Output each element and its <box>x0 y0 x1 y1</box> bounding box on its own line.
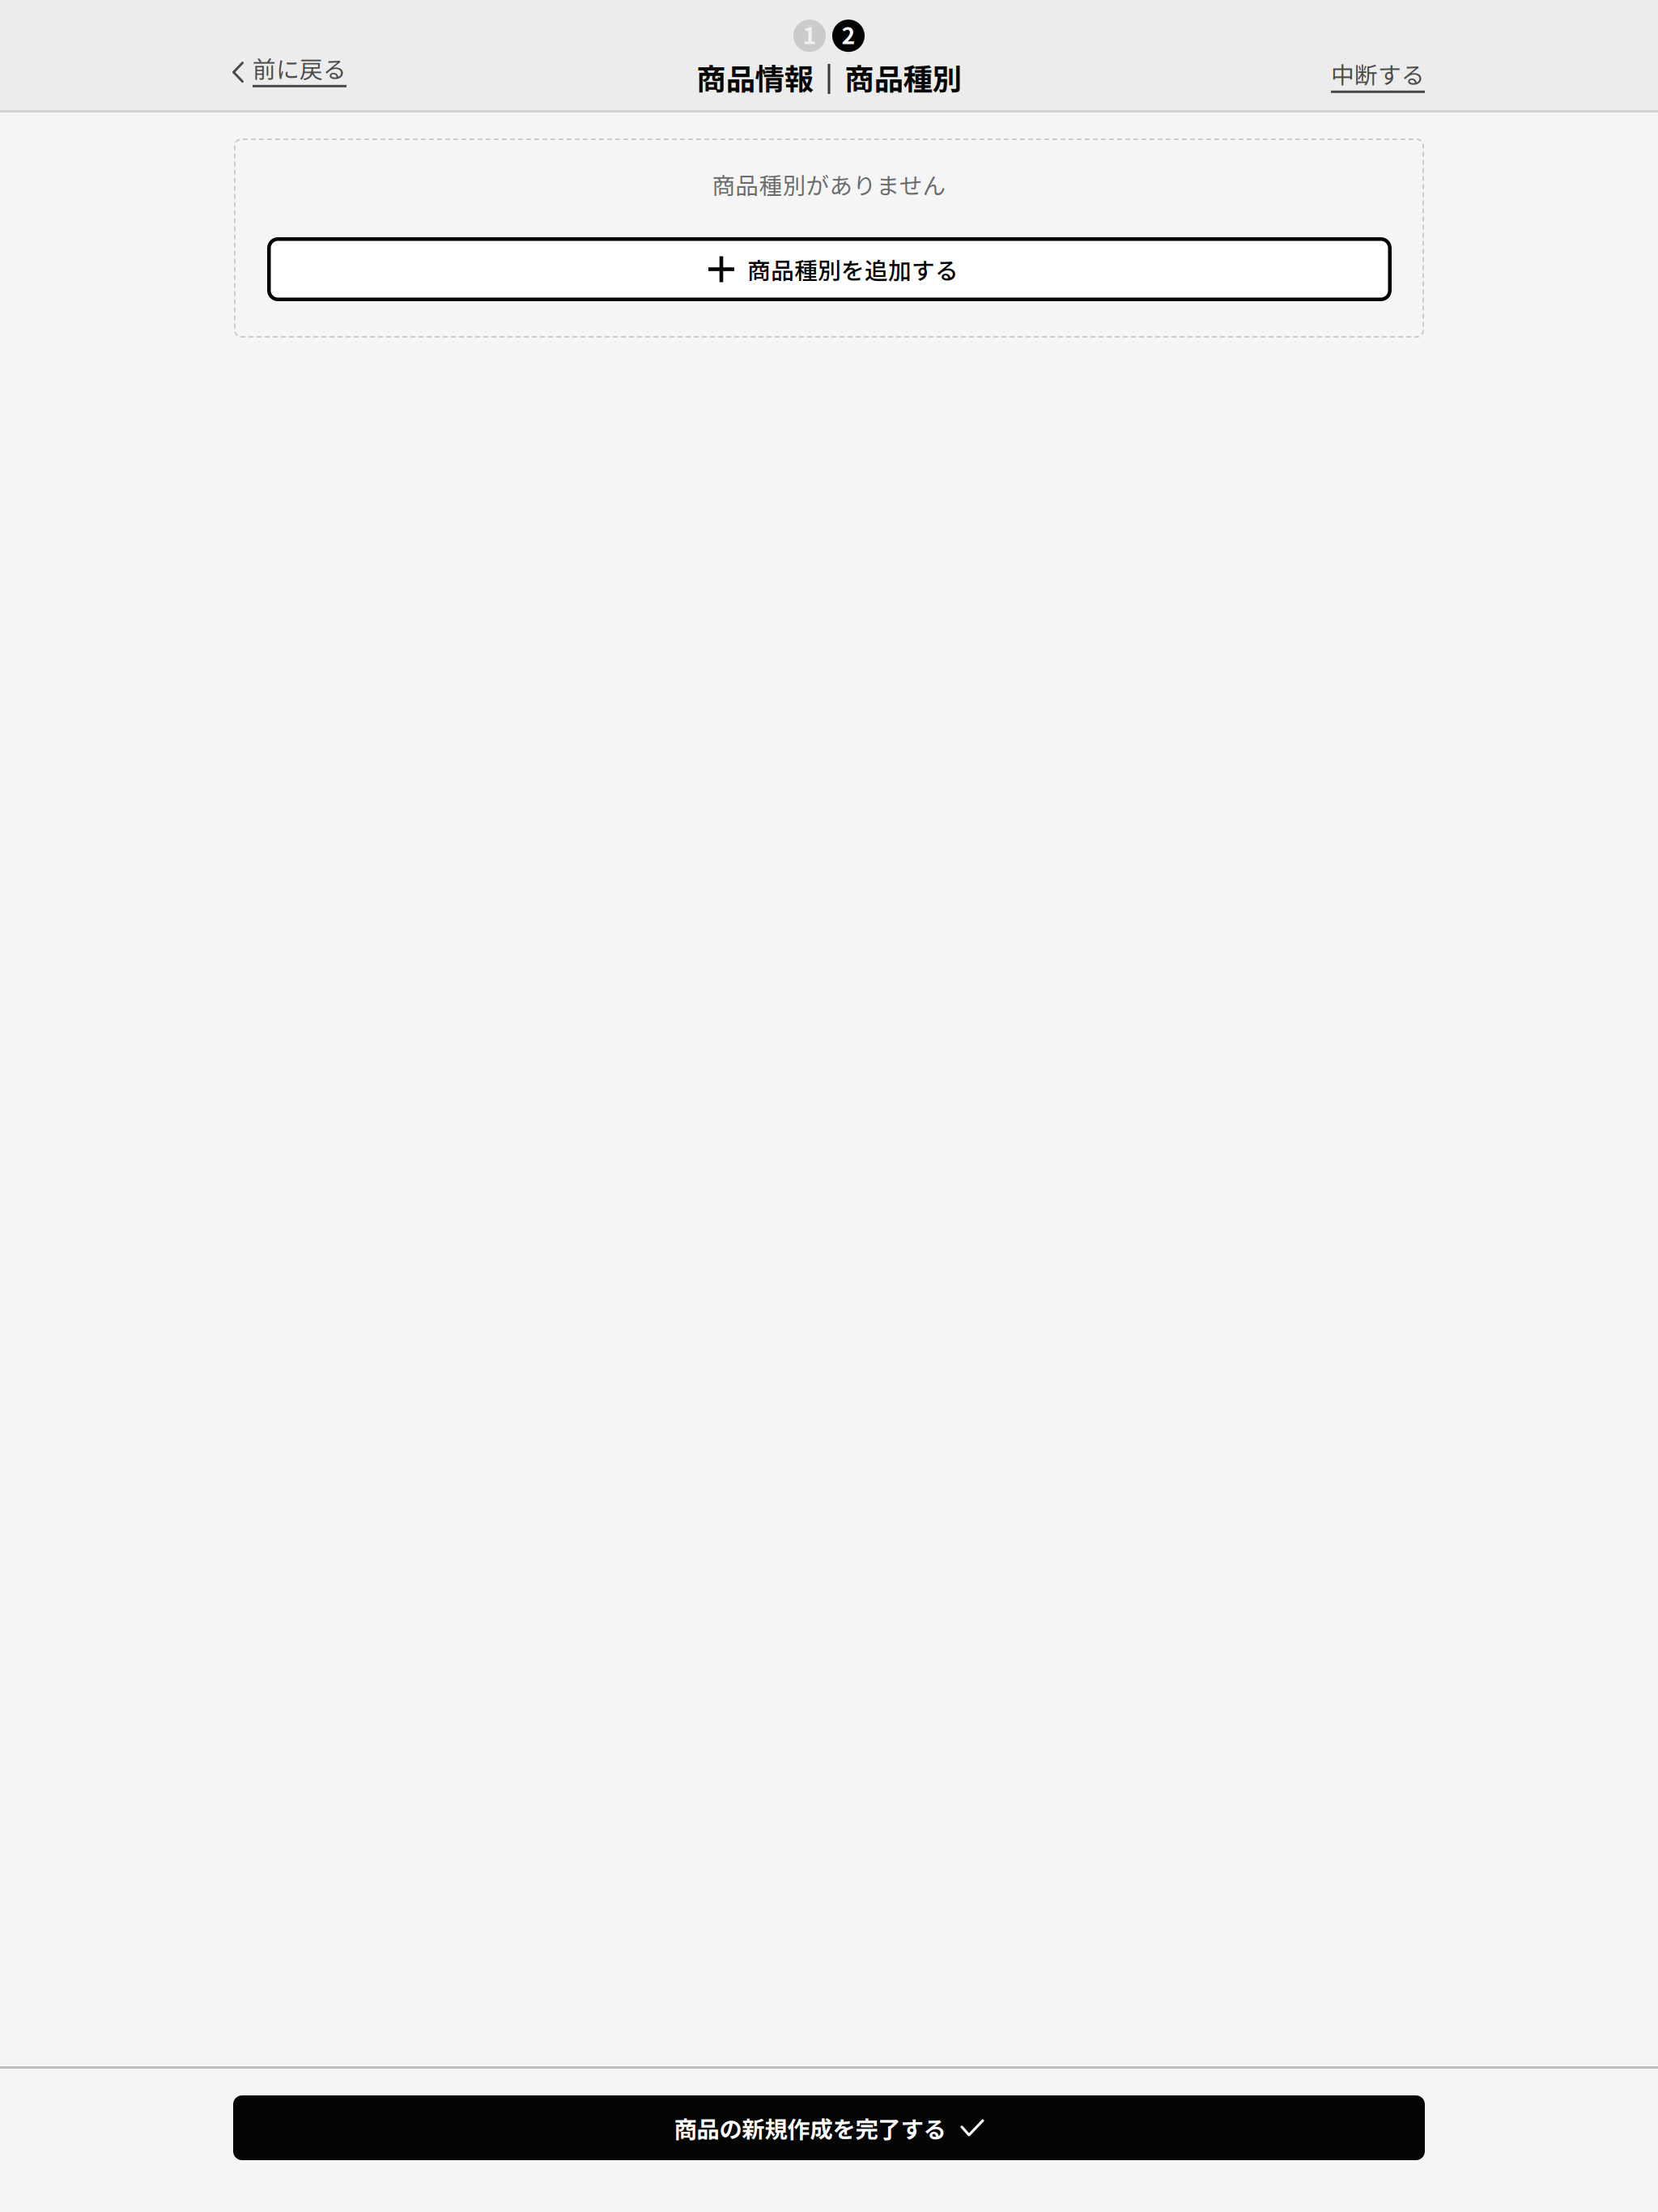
button[interactable]: 商品の新規作成を完了する <box>233 2095 1425 2160</box>
button[interactable]: 中断する <box>1307 2 1658 111</box>
staticText: 商品情報 <box>697 56 813 99</box>
staticText: 2 <box>842 17 855 51</box>
staticText: 商品種別 <box>845 56 961 99</box>
staticText: 商品の新規作成を完了する <box>674 2111 946 2144</box>
staticText: 商品種別がありません <box>712 168 946 201</box>
button[interactable]: 商品種別を追加する <box>267 237 1392 301</box>
staticText: 商品種別を追加する <box>747 252 959 286</box>
button[interactable]: 前に戻る <box>0 2 371 105</box>
staticText: 中断する <box>1331 57 1425 91</box>
staticText: 1 <box>803 17 816 51</box>
staticText: 前に戻る <box>253 51 346 85</box>
